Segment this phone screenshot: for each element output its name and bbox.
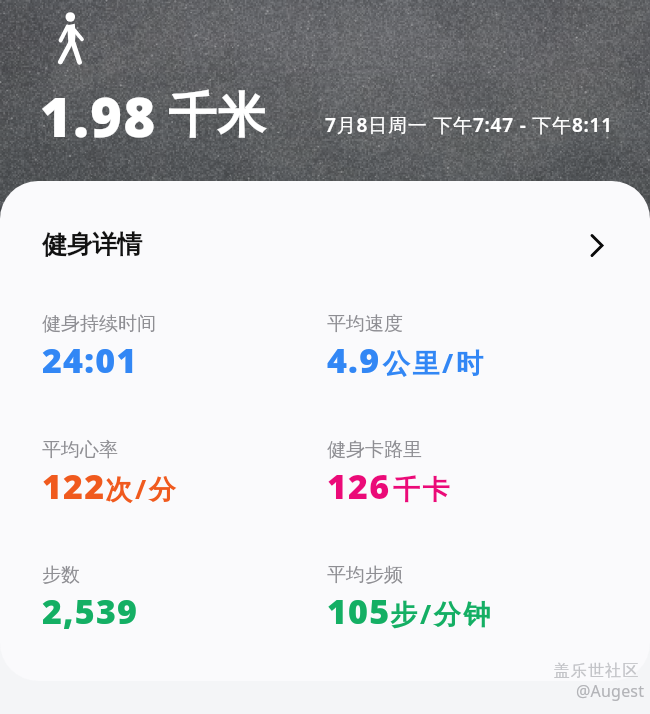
- staticText: 1.98: [40, 79, 157, 153]
- staticText: 122次/分: [42, 463, 179, 509]
- staticText: 平均步频: [327, 563, 403, 587]
- staticText: 平均速度: [327, 312, 403, 336]
- staticText: 105步/分钟: [327, 588, 493, 634]
- button[interactable]: 健身详情: [0, 205, 650, 283]
- staticText: 健身卡路里: [327, 438, 422, 462]
- staticText: 126 千卡: [327, 463, 453, 509]
- staticText: 健身持续时间: [42, 312, 156, 336]
- staticText: 24:01: [42, 337, 138, 383]
- staticText: 4.9 公里/时: [327, 337, 486, 383]
- staticText: 健身详情: [42, 229, 142, 260]
- staticText: 平均心率: [42, 438, 118, 462]
- staticText: 2,539: [42, 588, 139, 634]
- staticText: @Augest: [576, 680, 645, 702]
- staticText: 步数: [42, 563, 80, 587]
- staticText: 7月8日周一 下午7:47 - 下午8:11: [325, 112, 613, 138]
- other: Open fitness details: [581, 229, 611, 259]
- staticText: 千米: [168, 86, 266, 146]
- staticText: 盖乐世社区: [553, 661, 639, 681]
